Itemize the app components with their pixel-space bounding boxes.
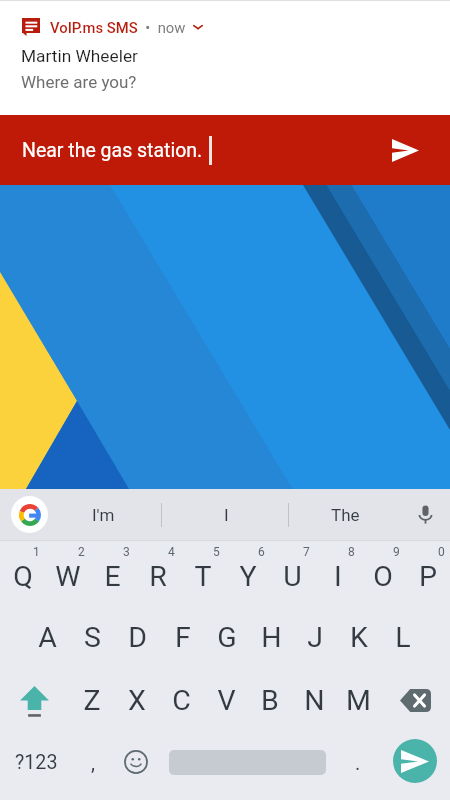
staticText: The — [331, 505, 360, 525]
button[interactable]: P — [405, 541, 450, 605]
staticText: Martin Wheeler — [21, 46, 138, 66]
staticText: D — [128, 621, 147, 654]
button[interactable]: N — [292, 669, 336, 732]
staticText: H — [261, 621, 282, 654]
staticText: L — [395, 621, 411, 654]
button[interactable]: M — [336, 669, 380, 732]
button[interactable]: Z — [69, 669, 114, 732]
button[interactable]: E — [90, 541, 135, 605]
button[interactable]: D — [115, 605, 160, 669]
button[interactable]: Y — [225, 541, 270, 605]
staticText: 5 — [213, 545, 220, 559]
staticText: 1 — [33, 545, 40, 559]
staticText: I'm — [92, 505, 115, 525]
button[interactable]: Voice input — [400, 489, 450, 540]
staticText: 6 — [258, 545, 265, 559]
staticText: R — [149, 560, 167, 593]
button[interactable]: K — [337, 605, 381, 669]
staticText: Z — [83, 684, 101, 717]
button[interactable]: Send message — [380, 732, 450, 800]
button[interactable]: A — [25, 605, 70, 669]
button[interactable]: The — [305, 489, 385, 540]
staticText: Y — [239, 560, 257, 593]
staticText: 3 — [123, 545, 130, 559]
staticText: B — [261, 684, 279, 717]
staticText: A — [38, 621, 57, 654]
staticText: I — [334, 560, 342, 593]
button[interactable]: I — [315, 541, 360, 605]
button[interactable]: U — [270, 541, 315, 605]
button[interactable]: I — [186, 489, 266, 540]
staticText: S — [84, 621, 101, 654]
staticText: Where are you? — [21, 72, 137, 92]
button[interactable]: R — [135, 541, 180, 605]
button[interactable]: J — [293, 605, 337, 669]
staticText: C — [172, 684, 191, 717]
staticText: J — [307, 621, 323, 654]
button[interactable]: L — [381, 605, 425, 669]
staticText: K — [350, 621, 368, 654]
staticText: M — [346, 684, 371, 717]
button[interactable]: , — [72, 732, 114, 800]
staticText: O — [373, 560, 393, 593]
button[interactable]: Google — [0, 489, 58, 540]
staticText: 2 — [78, 545, 85, 559]
staticText: , — [91, 751, 95, 774]
button[interactable]: I'm — [63, 489, 143, 540]
button[interactable]: G — [205, 605, 249, 669]
staticText: N — [304, 684, 325, 717]
button[interactable]: W — [45, 541, 90, 605]
button[interactable]: V — [204, 669, 248, 732]
staticText: P — [419, 560, 437, 593]
staticText: W — [55, 560, 81, 593]
staticText: ?123 — [15, 751, 58, 774]
button[interactable]: Shift — [0, 669, 69, 732]
button[interactable]: H — [249, 605, 293, 669]
staticText: T — [194, 560, 212, 593]
button[interactable]: S — [70, 605, 115, 669]
button[interactable]: F — [160, 605, 205, 669]
staticText: V — [217, 684, 236, 717]
button[interactable]: X — [114, 669, 159, 732]
staticText: 4 — [168, 545, 175, 559]
button[interactable]: O — [360, 541, 405, 605]
button[interactable]: T — [180, 541, 225, 605]
staticText: U — [283, 560, 302, 593]
staticText: 9 — [393, 545, 400, 559]
staticText: F — [175, 621, 191, 654]
button[interactable]: B — [248, 669, 292, 732]
staticText: X — [128, 684, 146, 717]
staticText: 0 — [438, 545, 445, 559]
button[interactable]: Send — [360, 115, 450, 185]
button[interactable]: Backspace — [380, 669, 450, 732]
staticText: 7 — [303, 545, 310, 559]
staticText: Near the gas station. — [22, 139, 203, 162]
button[interactable]: Space — [158, 732, 336, 800]
button[interactable]: ?123 — [0, 732, 72, 800]
staticText: I — [224, 505, 229, 525]
staticText: . — [355, 751, 361, 774]
button[interactable]: Emoji — [113, 732, 158, 800]
staticText: G — [217, 621, 237, 654]
staticText: 8 — [348, 545, 355, 559]
button[interactable]: C — [159, 669, 204, 732]
staticText: VoIP.ms SMS — [50, 19, 138, 36]
staticText: E — [104, 560, 121, 593]
staticText: • now — [138, 19, 186, 36]
staticText: Q — [13, 560, 33, 593]
button[interactable]: Q — [0, 541, 45, 605]
button[interactable]: . — [336, 732, 380, 800]
